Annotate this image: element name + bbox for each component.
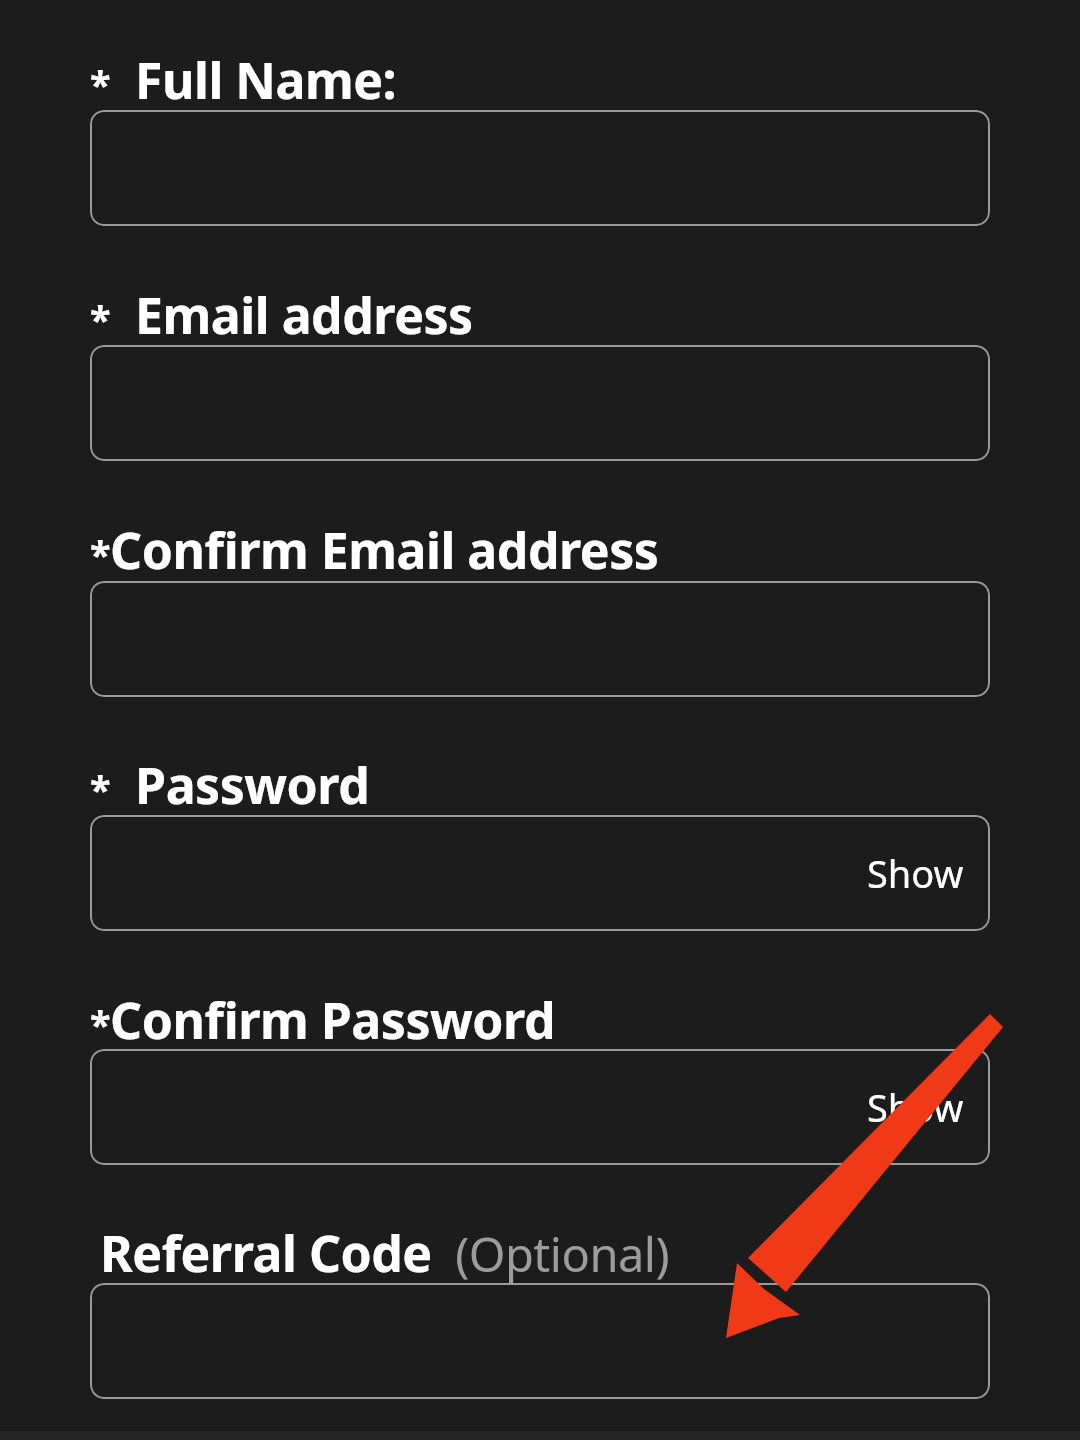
staticText: * Full Name: [90, 46, 397, 114]
staticText: * Email address [90, 281, 473, 349]
button[interactable]: Referral Code optional [90, 1283, 990, 1399]
button[interactable]: Full Name [90, 110, 990, 226]
staticText: * Password [90, 751, 370, 819]
button[interactable]: Password [90, 815, 990, 931]
button[interactable]: Confirm Email address [90, 581, 990, 697]
button[interactable]: Show password [863, 841, 968, 905]
staticText: Show [867, 847, 964, 899]
staticText: Referral Code (Optional) [100, 1219, 670, 1287]
staticText: *Confirm Password [90, 986, 555, 1054]
staticText: *Confirm Email address [90, 516, 659, 584]
button[interactable]: Show password [863, 1075, 968, 1139]
button[interactable]: Email address [90, 345, 990, 461]
button[interactable]: Confirm Password [90, 1049, 990, 1165]
staticText: Show [867, 1081, 964, 1133]
